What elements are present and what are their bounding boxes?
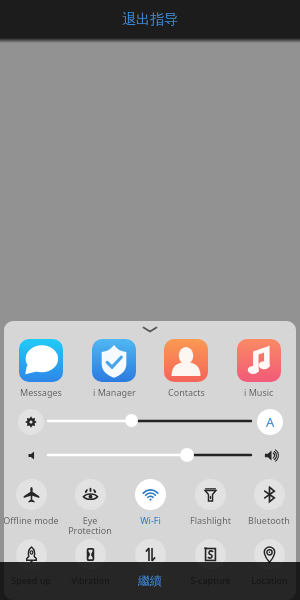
button[interactable]: Bluetooth bbox=[240, 479, 296, 526]
button[interactable]: Messages bbox=[5, 339, 77, 398]
button[interactable]: Data bbox=[121, 539, 179, 586]
staticText: i Music bbox=[244, 386, 274, 398]
button[interactable]: Mute bbox=[21, 444, 43, 466]
button[interactable]: 繼續 bbox=[120, 568, 180, 593]
staticText: Data bbox=[140, 574, 160, 586]
button[interactable]: i Music bbox=[223, 339, 295, 398]
button[interactable]: Location bbox=[240, 539, 296, 586]
staticText: Wi-Fi bbox=[140, 514, 161, 526]
staticText: Bluetooth bbox=[248, 514, 290, 526]
staticText: Speed up bbox=[11, 574, 51, 586]
button[interactable]: Eye Protection bbox=[61, 479, 119, 536]
button[interactable]: Collapse bbox=[4, 323, 296, 335]
button[interactable]: Display settings bbox=[18, 409, 44, 435]
button[interactable]: Flashlight bbox=[181, 479, 239, 526]
button[interactable]: Max volume bbox=[259, 443, 283, 467]
button[interactable]: S-capture bbox=[181, 539, 239, 586]
button[interactable]: i Manager bbox=[78, 339, 150, 398]
button[interactable]: Volume bbox=[180, 448, 194, 462]
button[interactable]: Speed up bbox=[4, 539, 60, 586]
staticText: Location bbox=[251, 574, 288, 586]
staticText: Vibration bbox=[71, 574, 110, 586]
button[interactable]: A bbox=[257, 409, 283, 435]
staticText: Contacts bbox=[168, 386, 205, 398]
staticText: 退出指导 bbox=[122, 11, 178, 29]
button[interactable]: Contacts bbox=[150, 339, 222, 398]
staticText: i Manager bbox=[93, 386, 136, 398]
staticText: Eye Protection bbox=[68, 514, 112, 536]
staticText: Flashlight bbox=[190, 514, 231, 526]
staticText: 繼續 bbox=[138, 573, 162, 588]
button[interactable]: Vibration bbox=[61, 539, 119, 586]
button[interactable]: Wi-Fi bbox=[121, 479, 179, 526]
button[interactable]: Brightness bbox=[125, 414, 138, 427]
button[interactable]: Offline mode bbox=[4, 479, 60, 526]
staticText: A bbox=[266, 413, 275, 431]
staticText: S-capture bbox=[190, 574, 231, 586]
staticText: Messages bbox=[20, 386, 62, 398]
button[interactable]: 退出指导 bbox=[0, 0, 300, 41]
staticText: Offline mode bbox=[4, 514, 59, 526]
